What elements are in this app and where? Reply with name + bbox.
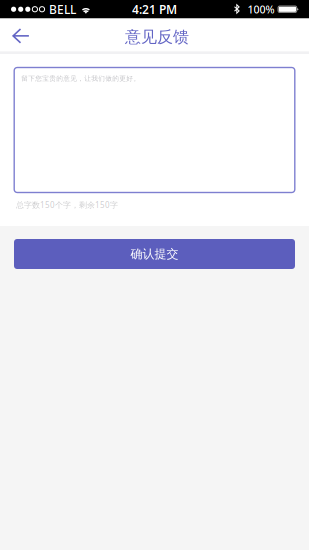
button[interactable]: Back <box>0 18 42 52</box>
button[interactable]: 确认提交 <box>14 239 295 269</box>
staticText: 留下您宝贵的意见，让我们做的更好。 <box>21 74 140 83</box>
staticText: 确认提交 <box>130 247 178 261</box>
staticText: BELL <box>49 1 76 17</box>
staticText: 100% <box>247 2 274 16</box>
staticText: 4:21 PM <box>132 1 177 17</box>
staticText: 总字数150个字，剩余150字 <box>16 199 118 210</box>
staticText: 意见反馈 <box>125 27 189 47</box>
